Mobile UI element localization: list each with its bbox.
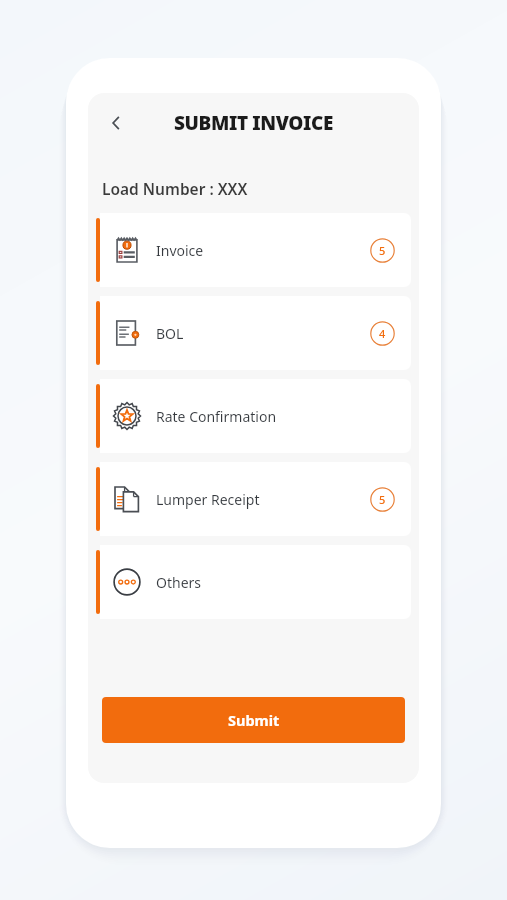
staticText: Others — [156, 573, 202, 592]
staticText: 5 — [379, 492, 386, 507]
button[interactable]: Others — [96, 545, 411, 619]
staticText: Invoice — [156, 241, 204, 260]
button[interactable]: Back — [96, 103, 136, 143]
staticText: SUBMIT INVOICE — [174, 110, 333, 136]
staticText: 5 — [379, 243, 386, 258]
staticText: Lumper Receipt — [156, 490, 260, 509]
button[interactable]: BOL — [96, 296, 411, 370]
button[interactable]: Rate Confirmation — [96, 379, 411, 453]
staticText: Load Number : XXX — [102, 178, 248, 199]
staticText: BOL — [156, 324, 184, 343]
staticText: Rate Confirmation — [156, 407, 277, 426]
button[interactable]: Submit — [102, 697, 405, 743]
staticText: 4 — [379, 326, 386, 341]
staticText: Submit — [228, 710, 280, 730]
button[interactable]: Invoice — [96, 213, 411, 287]
button[interactable]: Lumper Receipt — [96, 462, 411, 536]
